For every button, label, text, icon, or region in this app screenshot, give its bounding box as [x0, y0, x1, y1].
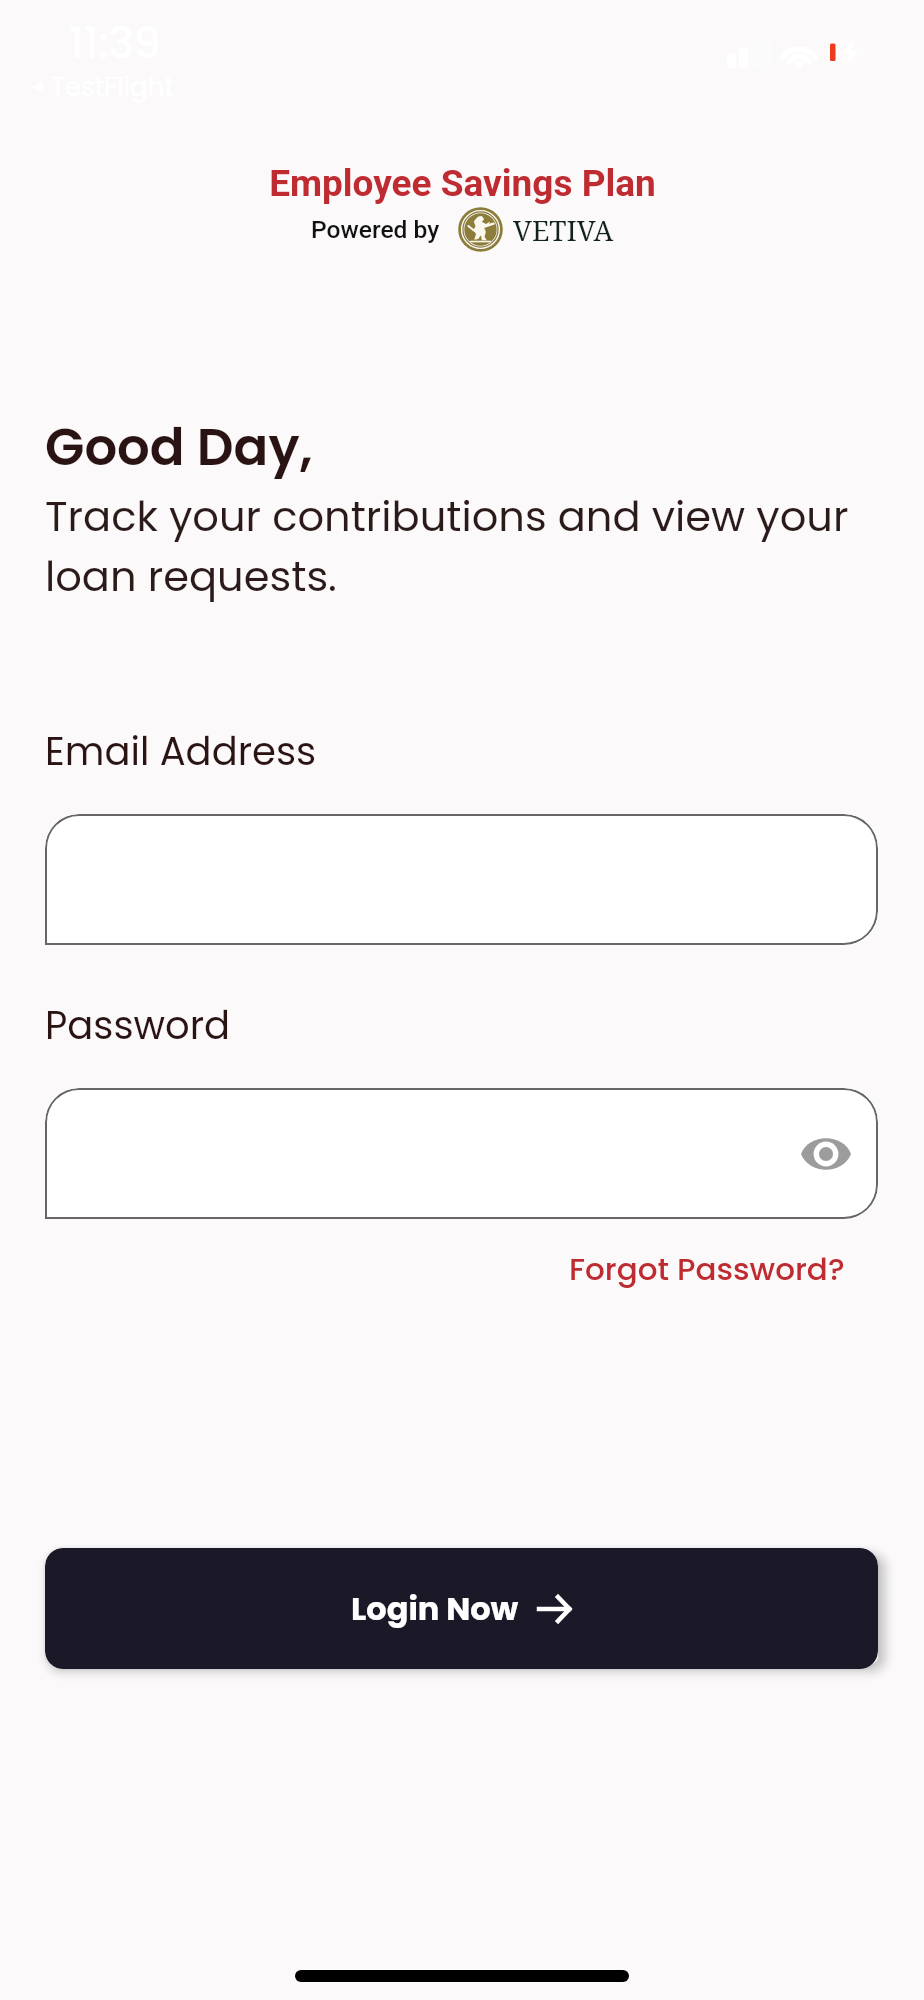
staticText: Email Address — [45, 725, 317, 779]
staticText: Good Day, — [45, 411, 313, 483]
button[interactable]: Login Now — [45, 1548, 878, 1669]
button[interactable]: Show password — [795, 1123, 857, 1185]
button[interactable]: Show password — [45, 1088, 878, 1219]
staticText: Login Now — [351, 1586, 519, 1631]
staticText: Powered by — [311, 215, 440, 244]
button[interactable] — [45, 814, 878, 945]
staticText: Forgot Password? — [569, 1247, 845, 1290]
staticText: VETIVA — [513, 211, 614, 249]
staticText: Employee Savings Plan — [269, 162, 656, 205]
staticText: Password — [45, 999, 231, 1053]
button[interactable]: Forgot Password? — [559, 1237, 855, 1300]
staticText: Track your contributions and view your l… — [45, 487, 878, 606]
